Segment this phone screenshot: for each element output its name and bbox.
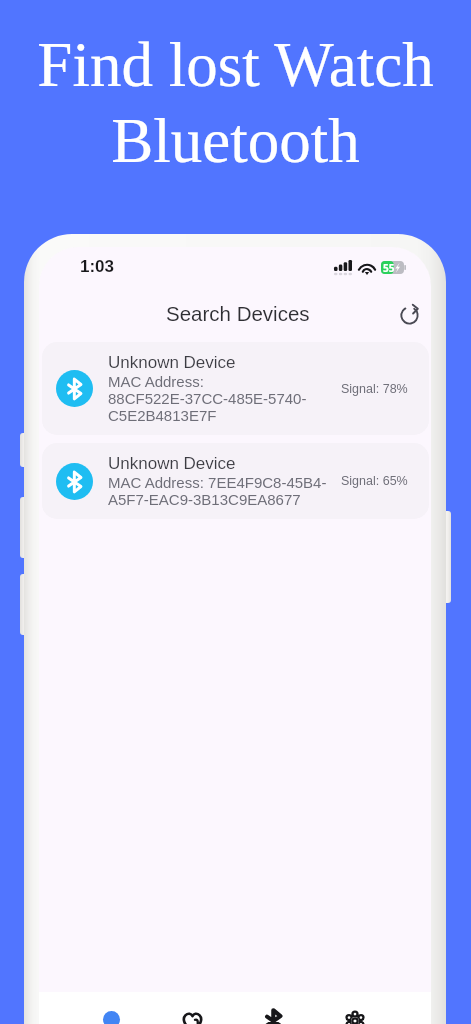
- staticText: MAC Address: 7EE4F9C8-45B4-: [108, 474, 327, 491]
- staticText: MAC Address:: [108, 373, 204, 390]
- button[interactable]: Unknown Device: [42, 342, 429, 435]
- staticText: 1:03: [80, 257, 115, 276]
- button[interactable]: Home: [70, 992, 152, 1024]
- button[interactable]: Favorites: [152, 992, 233, 1024]
- button[interactable]: Unknown Device: [42, 443, 429, 519]
- staticText: Find lost Watch Bluetooth: [0, 30, 471, 176]
- button[interactable]: Refresh: [392, 297, 426, 331]
- button[interactable]: Settings: [314, 992, 395, 1024]
- staticText: A5F7-EAC9-3B13C9EA8677: [108, 491, 301, 508]
- staticText: Signal: 78%: [341, 382, 408, 396]
- staticText: Unknown Device: [108, 353, 236, 372]
- staticText: Signal: 65%: [341, 474, 408, 488]
- staticText: C5E2B4813E7F: [108, 407, 217, 424]
- staticText: Unknown Device: [108, 454, 236, 473]
- staticText: Search Devices: [166, 302, 310, 325]
- staticText: 88CF522E-37CC-485E-5740-: [108, 390, 307, 407]
- staticText: 55: [383, 261, 395, 274]
- button[interactable]: Find devices: [233, 992, 314, 1024]
